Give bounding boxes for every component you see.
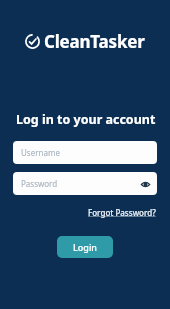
staticText: Forgot Password? xyxy=(88,207,156,218)
button[interactable]: Forgot Password? xyxy=(87,206,157,219)
staticText: Password xyxy=(21,178,58,189)
button[interactable]: Login xyxy=(57,236,113,258)
staticText: CleanTasker xyxy=(44,30,145,53)
staticText: Login xyxy=(73,241,97,253)
staticText: Username xyxy=(21,147,60,158)
button[interactable]: Username xyxy=(13,141,157,164)
button[interactable]: Show password xyxy=(139,178,151,190)
button[interactable]: Password xyxy=(13,172,157,195)
staticText: Log in to your account xyxy=(16,111,156,128)
